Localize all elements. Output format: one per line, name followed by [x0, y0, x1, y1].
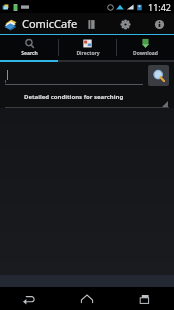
button[interactable]: Download: [117, 35, 174, 60]
button[interactable]: Back: [0, 287, 58, 310]
button[interactable]: Search: [148, 65, 169, 86]
button[interactable]: Directory: [59, 35, 116, 60]
staticText: ComicCafe: [22, 16, 78, 31]
button[interactable]: Info: [150, 15, 168, 33]
staticText: Directory: [76, 50, 100, 57]
button[interactable]: Library: [82, 15, 100, 33]
button[interactable]: Settings: [116, 15, 134, 33]
staticText: Download: [133, 50, 158, 57]
staticText: Detailed conditions for searching: [24, 93, 124, 101]
staticText: Search: [21, 50, 38, 57]
button[interactable]: Detailed conditions for searching: [0, 88, 174, 108]
button[interactable]: Home: [58, 287, 116, 310]
button[interactable]: Recents: [116, 287, 174, 310]
button[interactable]: Search: [0, 35, 58, 60]
button[interactable]: [5, 65, 143, 85]
staticText: 11:42: [148, 1, 172, 13]
